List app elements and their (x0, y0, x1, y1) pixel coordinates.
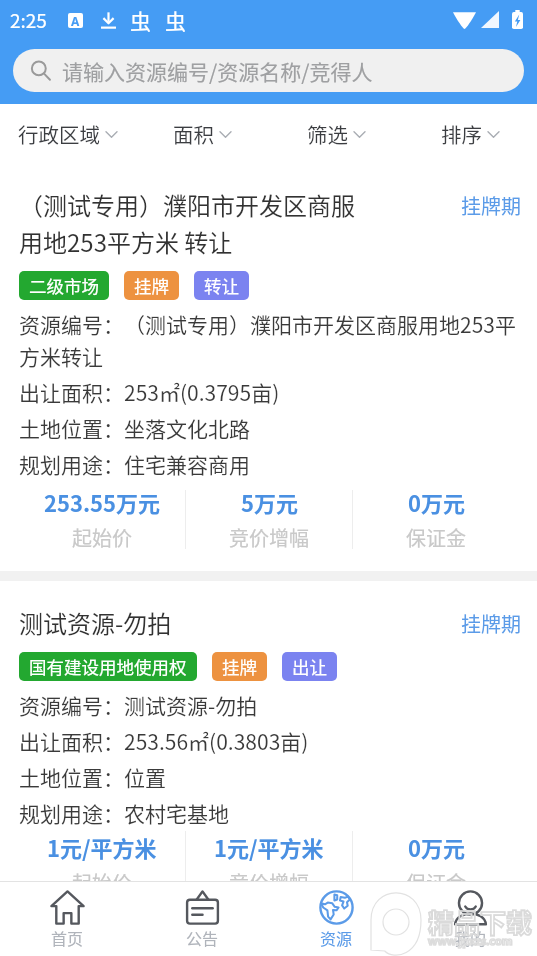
staticText: 出让面积：253.56㎡(0.3803亩) (19, 726, 521, 756)
staticText: 资源 (320, 926, 353, 949)
button[interactable]: 请输入资源编号/资源名称/竞得人 (13, 49, 524, 92)
staticText: 挂牌 (134, 273, 169, 298)
staticText: 请输入资源编号/资源名称/竞得人 (62, 56, 373, 86)
staticText: 土地位置：位置 (19, 762, 521, 792)
staticText: 面积 (173, 119, 214, 149)
staticText: 我的 (454, 926, 487, 949)
staticText: 5万元 (241, 486, 298, 518)
button[interactable]: 面积 (135, 104, 269, 163)
button[interactable]: 我的 (403, 881, 537, 956)
staticText: 排序 (441, 119, 482, 149)
staticText: 二级市场 (29, 273, 99, 298)
staticText: 国有建设用地使用权 (29, 654, 187, 679)
button[interactable]: 资源 (269, 881, 403, 956)
staticText: 出让 (292, 654, 327, 679)
staticText: 行政区域 (18, 119, 100, 149)
staticText: 2:25 (10, 6, 47, 34)
staticText: 1元/平方米 (47, 831, 157, 863)
staticText: 转让 (204, 273, 239, 298)
staticText: 首页 (51, 926, 84, 949)
staticText: 253.55万元 (44, 486, 161, 518)
staticText: 0万元 (408, 486, 465, 518)
staticText: 规划用途：农村宅基地 (19, 798, 521, 828)
staticText: 筛选 (307, 119, 348, 149)
button[interactable]: 测试资源-勿拍 (0, 581, 537, 881)
staticText: 测试资源-勿拍 (19, 605, 369, 640)
staticText: www.jpxzs.com (428, 933, 513, 948)
staticText: 挂牌期 (461, 609, 521, 638)
staticText: 起始价 (72, 868, 132, 881)
staticText: 出让面积：253㎡(0.3795亩) (19, 377, 521, 407)
staticText: 挂牌 (222, 654, 257, 679)
staticText: 保证金 (406, 523, 466, 552)
staticText: 保证金 (406, 868, 466, 881)
button[interactable]: 行政区域 (0, 104, 135, 163)
staticText: 1元/平方米 (214, 831, 324, 863)
staticText: 起始价 (72, 523, 132, 552)
staticText: 虫 (165, 5, 186, 35)
button[interactable]: 首页 (0, 881, 135, 956)
staticText: 竞价增幅 (229, 868, 309, 881)
button[interactable]: 排序 (403, 104, 537, 163)
staticText: 精品下载 (428, 903, 533, 941)
staticText: 虫 (130, 5, 151, 35)
staticText: A (71, 13, 80, 28)
staticText: 资源编号：（测试专用）濮阳市开发区商服用地253平方米转让 (19, 309, 521, 371)
staticText: 0万元 (408, 831, 465, 863)
staticText: 规划用途：住宅兼容商用 (19, 449, 521, 479)
staticText: 挂牌期 (461, 191, 521, 220)
button[interactable]: （测试专用）濮阳市开发区商服用地253平方米 转让 (0, 163, 537, 571)
staticText: 公告 (186, 926, 219, 949)
button[interactable]: 公告 (135, 881, 269, 956)
staticText: 资源编号：测试资源-勿拍 (19, 690, 521, 720)
staticText: 土地位置：坐落文化北路 (19, 413, 521, 443)
staticText: 竞价增幅 (229, 523, 309, 552)
button[interactable]: 筛选 (269, 104, 403, 163)
staticText: （测试专用）濮阳市开发区商服用地253平方米 转让 (19, 187, 369, 259)
